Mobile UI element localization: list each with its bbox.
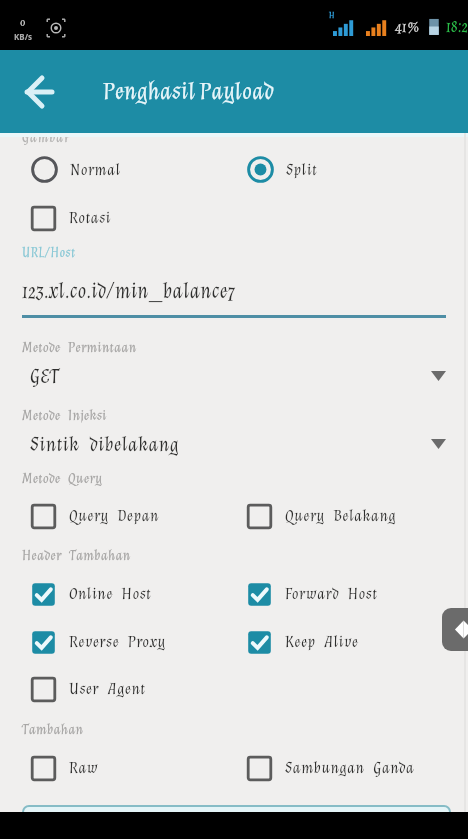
staticText: Online Host — [69, 583, 152, 605]
button[interactable]: Reverse Proxy — [30, 628, 230, 656]
button[interactable]: Open side drawer — [442, 608, 468, 651]
staticText: Raw — [69, 757, 99, 779]
button[interactable]: Keep Alive — [246, 628, 461, 656]
staticText: H — [329, 9, 335, 21]
staticText: 18:2 — [446, 15, 468, 38]
staticText: GET — [30, 363, 60, 390]
button[interactable]: GET — [0, 360, 468, 392]
staticText: Gambar — [22, 128, 71, 147]
staticText: Rotasi — [69, 207, 111, 229]
staticText: Keep Alive — [285, 631, 359, 653]
staticText: Reverse Proxy — [69, 631, 166, 653]
staticText: Split — [286, 159, 318, 181]
staticText: 123.xl.co.id/min_balance7 — [22, 277, 236, 306]
button[interactable]: Navigate back — [20, 72, 60, 112]
staticText: Metode Permintaan — [22, 338, 137, 357]
staticText: URL/Host — [22, 244, 76, 262]
button[interactable]: Forward Host — [246, 580, 461, 608]
button[interactable]: Sintik dibelakang — [0, 428, 468, 460]
staticText: Metode Query — [22, 469, 103, 488]
button[interactable]: Raw — [30, 754, 230, 782]
staticText: Tambahan — [22, 720, 84, 739]
staticText: Penghasil Payload — [103, 75, 274, 107]
button[interactable]: Query Depan — [30, 502, 230, 530]
button[interactable]: User Agent — [30, 675, 230, 703]
staticText: 0 — [20, 14, 26, 31]
staticText: Normal — [70, 159, 121, 181]
staticText: User Agent — [69, 678, 146, 700]
staticText: Query Depan — [69, 505, 159, 527]
staticText: Header Tambahan — [22, 546, 131, 565]
staticText: 41% — [395, 16, 421, 38]
staticText: Sintik dibelakang — [30, 431, 179, 458]
button[interactable]: Rotasi — [30, 204, 230, 232]
button[interactable]: Split — [246, 155, 446, 184]
button[interactable]: Query Belakang — [246, 502, 461, 530]
staticText: Sambungan Ganda — [285, 757, 415, 779]
staticText: Metode Injeksi — [22, 406, 107, 425]
staticText: Forward Host — [285, 583, 378, 605]
button[interactable]: Online Host — [30, 580, 230, 608]
button[interactable] — [22, 805, 451, 812]
staticText: KB/s — [14, 31, 32, 42]
button[interactable]: Normal — [30, 155, 230, 184]
staticText: Query Belakang — [285, 505, 397, 527]
button[interactable]: Sambungan Ganda — [246, 754, 461, 782]
